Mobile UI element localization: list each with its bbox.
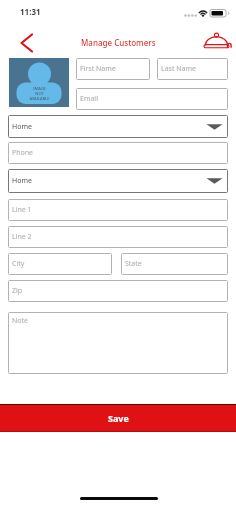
staticText: Line 2: [12, 232, 32, 242]
button[interactable]: IMAGE NOT AVAILABLE: [9, 58, 69, 107]
button[interactable]: [12, 29, 38, 55]
button[interactable]: Home: [8, 115, 228, 138]
staticText: Zip: [12, 286, 23, 296]
staticText: 11:31: [20, 6, 41, 17]
staticText: City: [12, 259, 25, 269]
staticText: Note: [12, 316, 29, 326]
button[interactable]: Home: [8, 169, 228, 193]
button[interactable]: [198, 29, 234, 53]
button[interactable]: Line 1: [8, 199, 228, 221]
staticText: Save: [108, 412, 129, 424]
button[interactable]: Email: [76, 88, 228, 110]
button[interactable]: State: [121, 253, 228, 275]
button[interactable]: Note: [8, 312, 228, 374]
staticText: IMAGE NOT AVAILABLE: [29, 86, 50, 101]
button[interactable]: First Name: [76, 58, 150, 80]
staticText: Line 1: [12, 205, 32, 215]
staticText: Phone: [12, 148, 34, 158]
button[interactable]: Save: [0, 404, 236, 432]
staticText: Last Name: [161, 64, 197, 74]
button[interactable]: Zip: [8, 280, 228, 302]
button[interactable]: Phone: [8, 142, 228, 164]
staticText: Home: [12, 122, 32, 132]
staticText: Email: [80, 94, 98, 104]
button[interactable]: Line 2: [8, 226, 228, 248]
button[interactable]: City: [8, 253, 112, 275]
staticText: Home: [12, 176, 32, 186]
staticText: Manage Customers: [81, 37, 156, 48]
button[interactable]: Last Name: [157, 58, 228, 80]
staticText: First Name: [80, 64, 116, 74]
staticText: State: [125, 259, 142, 269]
